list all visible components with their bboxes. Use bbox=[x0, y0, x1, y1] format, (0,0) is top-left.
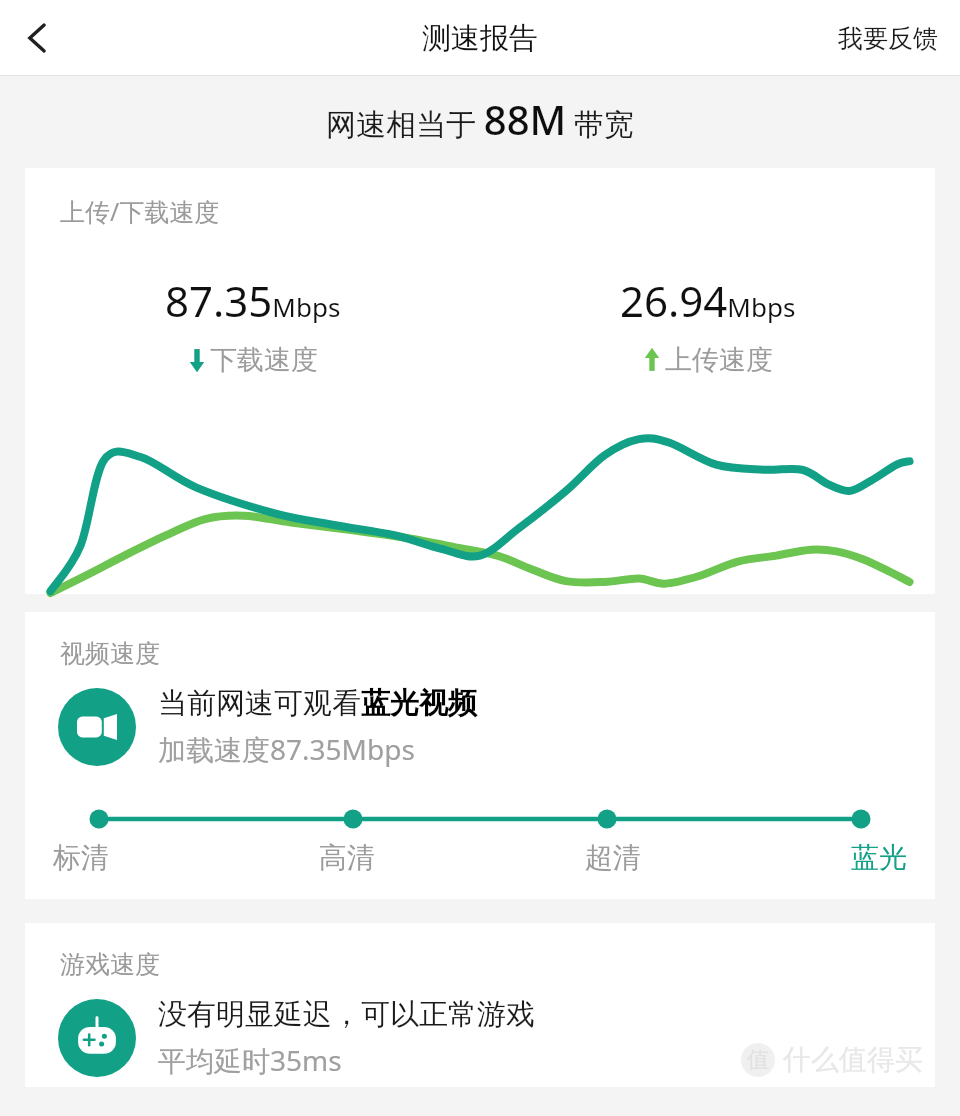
button[interactable]: 超清 bbox=[579, 836, 647, 879]
button[interactable]: 标清 bbox=[47, 836, 115, 879]
staticText: 我要反馈 bbox=[838, 23, 938, 54]
staticText: 测速报告 bbox=[422, 20, 538, 57]
button[interactable]: 蓝光 bbox=[845, 836, 913, 879]
staticText: 值 bbox=[747, 1046, 769, 1074]
button[interactable]: 我要反馈 bbox=[816, 9, 960, 68]
staticText: 上传/下载速度 bbox=[60, 194, 220, 228]
staticText: 视频速度 bbox=[60, 638, 160, 669]
staticText: 蓝光 bbox=[851, 840, 907, 875]
staticText: 加载速度87.35Mbps bbox=[158, 730, 415, 768]
button[interactable]: Back bbox=[0, 0, 76, 76]
staticText: 87.35Mbps bbox=[165, 272, 341, 329]
staticText: 超清 bbox=[585, 840, 641, 875]
staticText: 上传速度 bbox=[665, 343, 773, 377]
staticText: 下载速度 bbox=[210, 343, 318, 377]
staticText: 网速相当于 88M 带宽 bbox=[326, 92, 635, 146]
staticText: 标清 bbox=[53, 840, 109, 875]
staticText: 高清 bbox=[319, 840, 375, 875]
staticText: 游戏速度 bbox=[60, 949, 160, 980]
staticText: 平均延时35ms bbox=[158, 1041, 342, 1079]
staticText: 没有明显延迟，可以正常游戏 bbox=[158, 996, 535, 1033]
button[interactable]: 高清 bbox=[313, 836, 381, 879]
staticText: 什么值得买 bbox=[783, 1042, 923, 1077]
staticText: 26.94Mbps bbox=[620, 272, 796, 329]
staticText: 当前网速可观看蓝光视频 bbox=[158, 685, 477, 722]
